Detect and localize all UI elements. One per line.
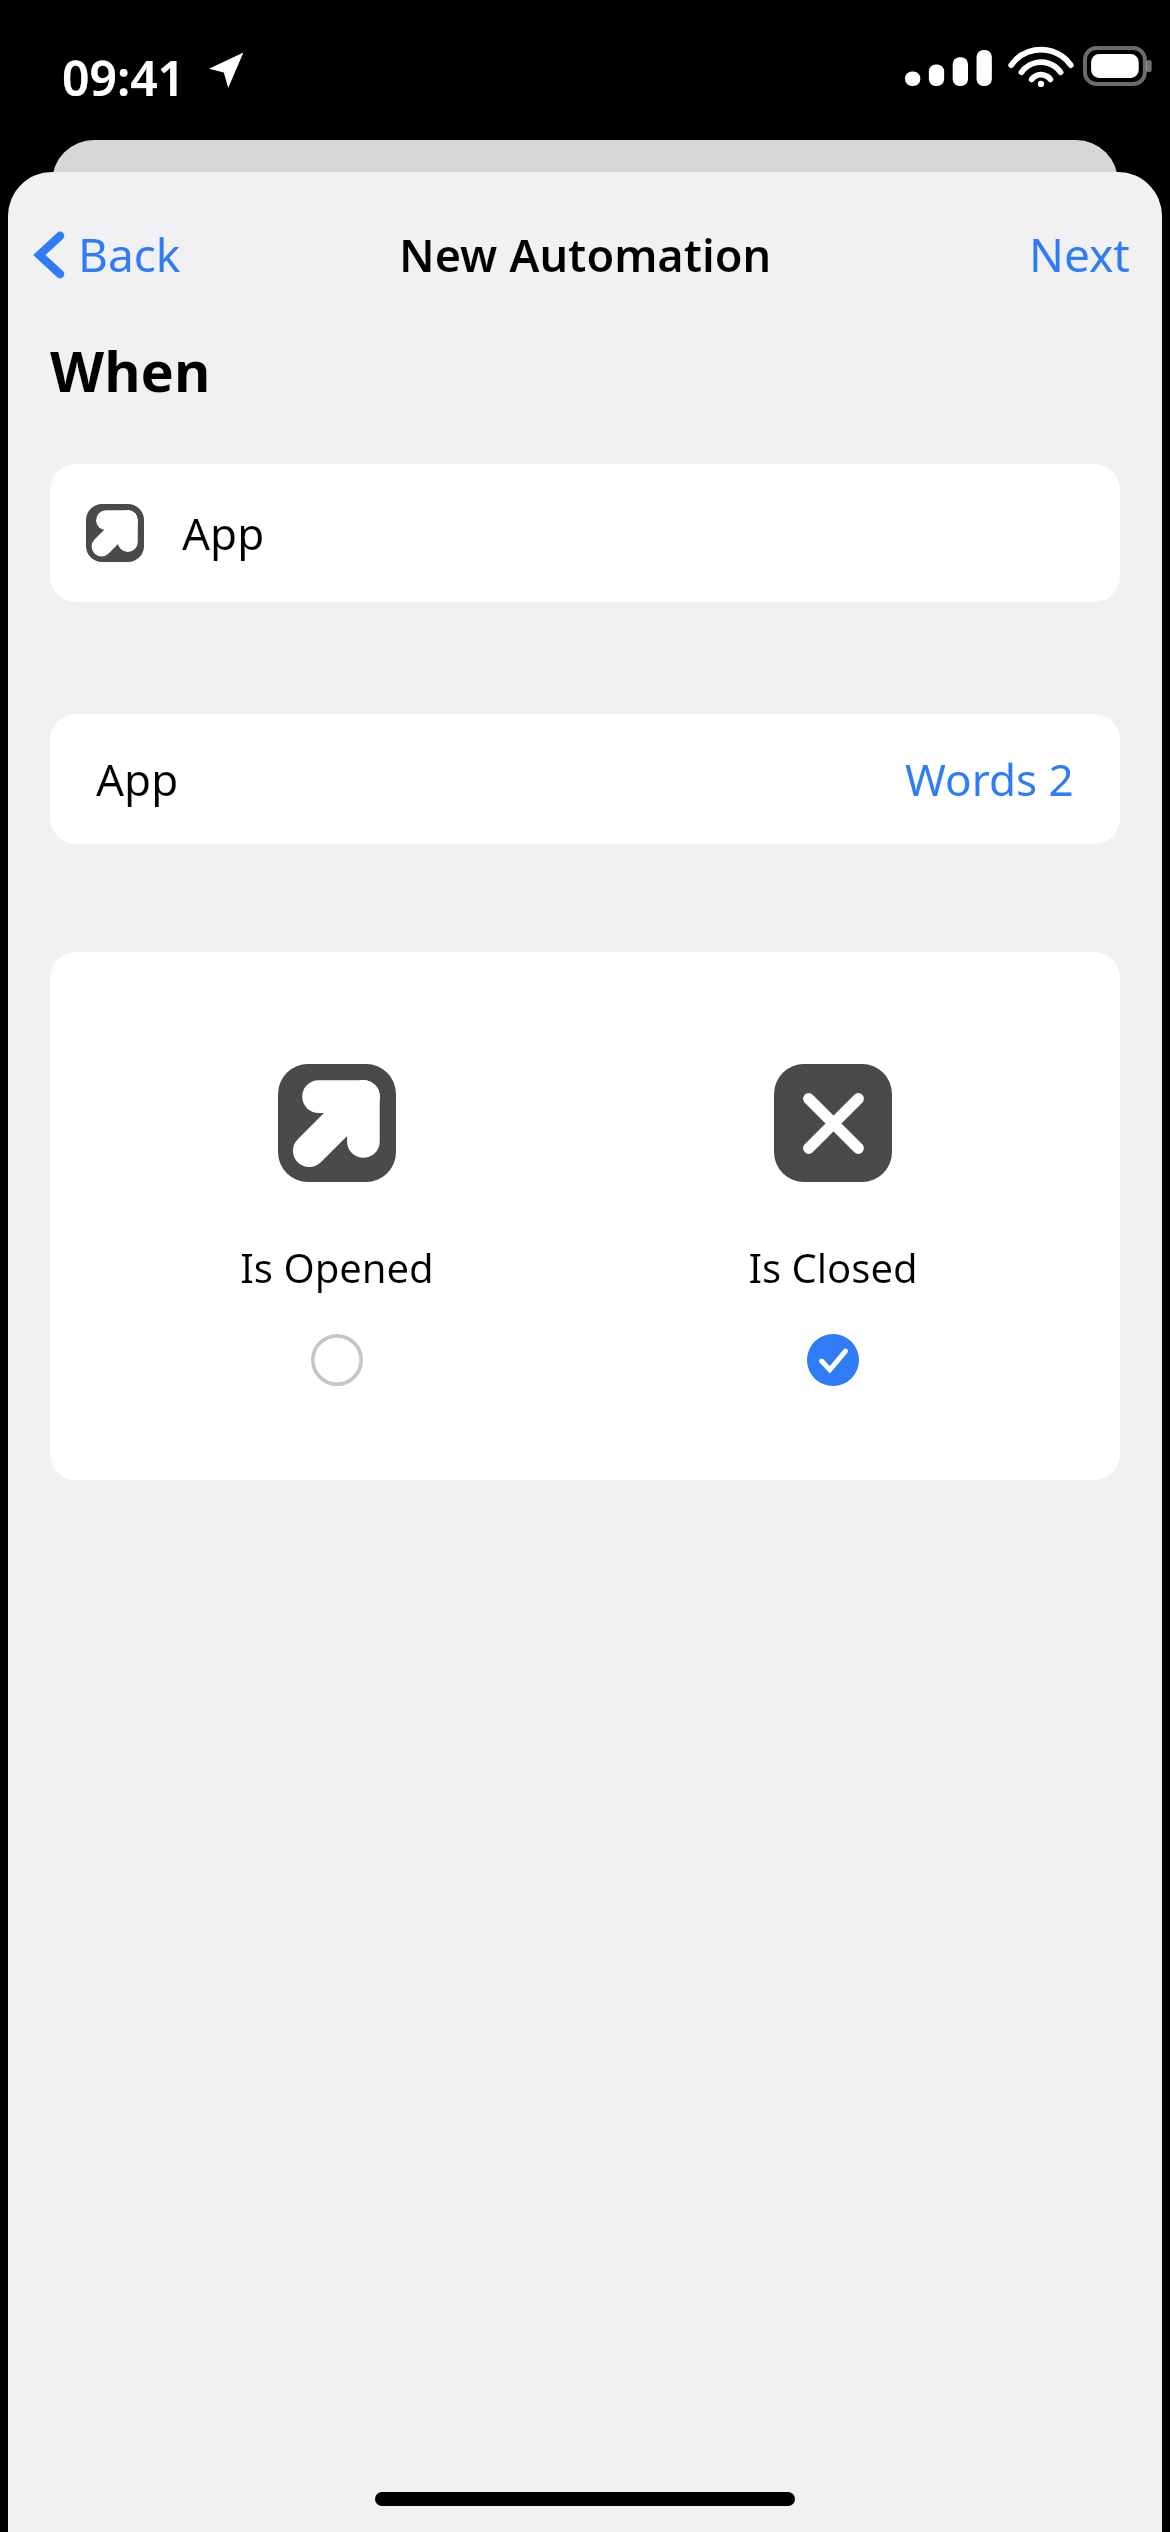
button[interactable]: App xyxy=(50,464,1120,602)
button[interactable]: Next xyxy=(1013,211,1146,298)
button[interactable]: Back xyxy=(22,213,195,296)
staticText: When xyxy=(50,332,211,408)
staticText: App xyxy=(96,749,179,809)
staticText: App xyxy=(182,503,265,563)
staticText: Is Closed xyxy=(748,1240,918,1294)
button[interactable]: Is Opened xyxy=(127,952,547,1480)
staticText: Back xyxy=(78,223,181,286)
staticText: Is Opened xyxy=(240,1240,434,1294)
staticText: New Automation xyxy=(399,224,772,285)
staticText: Words 2 xyxy=(905,749,1074,809)
staticText: 09:41 xyxy=(62,45,186,110)
staticText: Next xyxy=(1029,223,1130,286)
button[interactable]: App xyxy=(50,714,1120,844)
button[interactable]: Is Closed xyxy=(623,952,1043,1480)
